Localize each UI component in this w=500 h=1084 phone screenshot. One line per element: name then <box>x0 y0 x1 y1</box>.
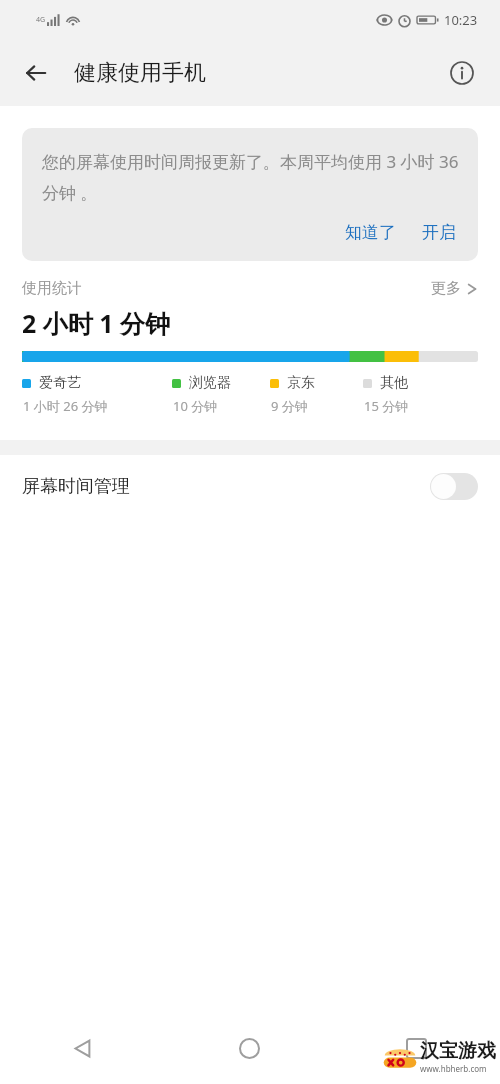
staticText: 10 分钟 <box>173 397 218 415</box>
staticText: 其他 <box>380 374 408 392</box>
staticText: 4G <box>36 15 46 25</box>
button[interactable]: 知道了 <box>341 218 400 247</box>
button[interactable]: Back <box>0 1012 166 1084</box>
staticText: 开启 <box>422 222 456 243</box>
staticText: 爱奇艺 <box>39 374 81 392</box>
staticText: 京东 <box>287 374 315 392</box>
button[interactable]: 开启 <box>418 218 460 247</box>
button[interactable]: Home <box>166 1012 333 1084</box>
staticText: 汉宝游戏 <box>420 1039 496 1063</box>
staticText: 9 分钟 <box>271 397 308 415</box>
staticText: 屏幕时间管理 <box>22 475 130 498</box>
staticText: 更多 <box>431 279 461 298</box>
button[interactable]: Info <box>442 53 482 93</box>
button[interactable]: Back <box>14 51 58 95</box>
button[interactable]: Recents <box>333 1012 500 1084</box>
staticText: 2 小时 1 分钟 <box>22 306 171 340</box>
staticText: 15 分钟 <box>364 397 409 415</box>
staticText: 1 小时 26 分钟 <box>23 397 108 415</box>
staticText: www.hbherb.com <box>420 1063 487 1074</box>
staticText: 知道了 <box>345 222 396 243</box>
staticText: 健康使用手机 <box>74 59 206 87</box>
button[interactable]: 使用统计 <box>22 279 478 298</box>
button[interactable]: Screen time management toggle <box>430 473 478 500</box>
staticText: 10:23 <box>444 11 478 29</box>
button[interactable]: 屏幕时间管理 <box>0 455 500 517</box>
staticText: 您的屏幕使用时间周报更新了。本周平均使用 3 小时 36 分钟 。 <box>42 150 460 204</box>
staticText: 使用统计 <box>22 279 82 298</box>
staticText: 浏览器 <box>189 374 231 392</box>
